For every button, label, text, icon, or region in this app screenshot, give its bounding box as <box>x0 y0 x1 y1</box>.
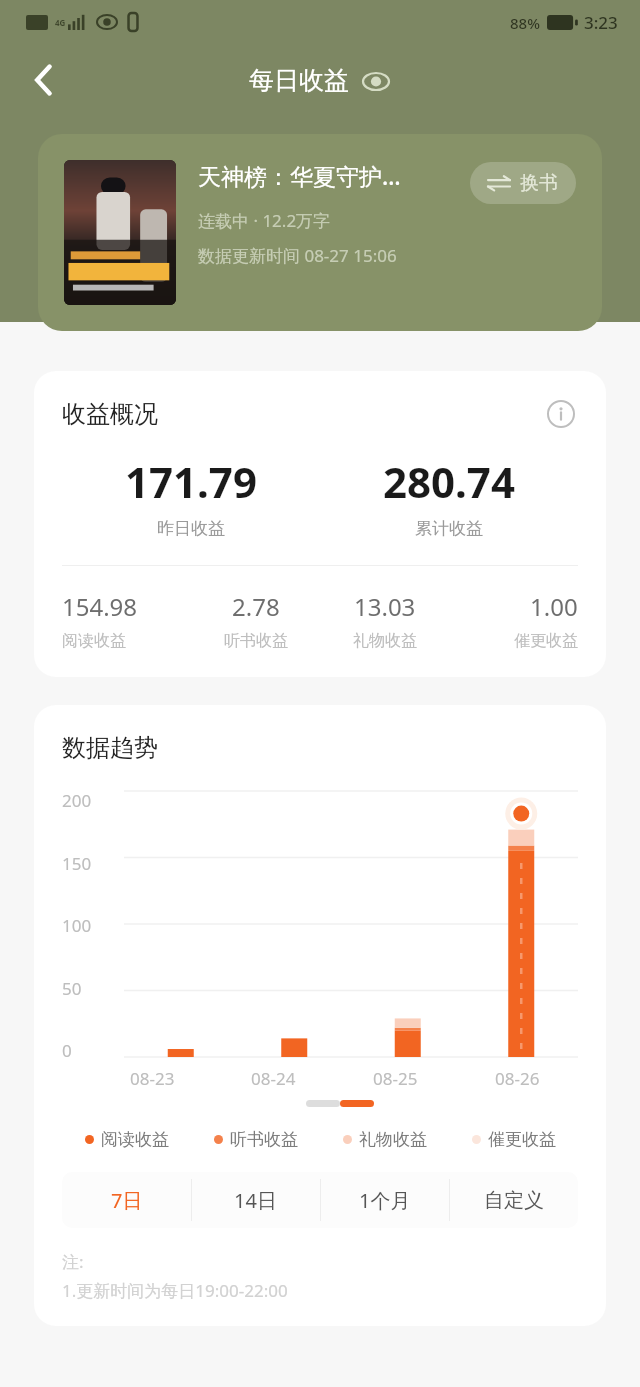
staticText: 阅读收益 <box>62 631 126 651</box>
staticText: 催更收益 <box>488 1129 556 1150</box>
staticText: 听书收益 <box>224 631 288 651</box>
button[interactable]: Back <box>18 54 70 106</box>
staticText: 08-23 <box>130 1067 175 1090</box>
staticText: 50 <box>62 977 82 995</box>
staticText: 154.98 <box>62 590 138 623</box>
staticText: 280.74 <box>383 453 515 510</box>
staticText: 4G <box>55 17 66 28</box>
button[interactable]: 自定义 <box>449 1172 578 1228</box>
staticText: 礼物收益 <box>359 1129 427 1150</box>
staticText: 08-26 <box>495 1067 540 1090</box>
staticText: 礼物收益 <box>353 631 417 651</box>
staticText: 100 <box>62 914 92 932</box>
staticText: 88% <box>510 13 540 33</box>
staticText: 0 <box>62 1039 72 1057</box>
staticText: 14日 <box>234 1187 277 1214</box>
staticText: 催更收益 <box>514 631 578 651</box>
staticText: 1.更新时间为每日19:00-22:00 <box>62 1279 288 1302</box>
button[interactable]: 14日 <box>191 1172 320 1228</box>
staticText: 数据更新时间 08-27 15:06 <box>198 244 397 267</box>
staticText: 13.03 <box>354 590 416 623</box>
staticText: 收益概况 <box>62 399 158 429</box>
button[interactable]: 天神榜：华夏守护… <box>38 134 602 331</box>
staticText: 昨日收益 <box>157 518 225 539</box>
staticText: 连载中 · 12.2万字 <box>198 209 331 232</box>
button[interactable]: 换书 <box>470 162 576 204</box>
staticText: 150 <box>62 852 92 870</box>
button[interactable]: 1个月 <box>320 1172 449 1228</box>
staticText: 天神榜：华夏守护… <box>198 160 401 191</box>
staticText: 数据趋势 <box>62 733 158 763</box>
staticText: 听书收益 <box>230 1129 298 1150</box>
staticText: 累计收益 <box>415 518 483 539</box>
staticText: 阅读收益 <box>101 1129 169 1150</box>
staticText: 3:23 <box>584 11 618 34</box>
staticText: 注: <box>62 1250 84 1273</box>
staticText: 171.79 <box>125 453 257 510</box>
staticText: 1个月 <box>359 1187 411 1214</box>
button[interactable]: Toggle visibility <box>361 66 391 96</box>
staticText: 08-24 <box>251 1067 296 1090</box>
staticText: 换书 <box>520 171 558 195</box>
button[interactable]: 7日 <box>62 1172 191 1228</box>
staticText: 自定义 <box>484 1188 544 1213</box>
staticText: 200 <box>62 789 92 807</box>
staticText: 08-25 <box>373 1067 418 1090</box>
staticText: 7日 <box>111 1187 143 1214</box>
staticText: 2.78 <box>232 590 280 623</box>
staticText: 每日收益 <box>249 65 349 96</box>
staticText: 1.00 <box>530 590 578 623</box>
button[interactable]: Info <box>544 397 578 431</box>
